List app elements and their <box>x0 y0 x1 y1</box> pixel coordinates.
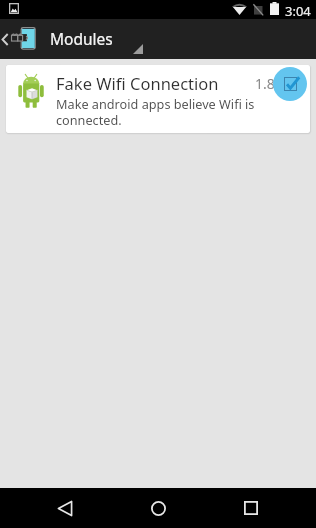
staticText: 3:04 <box>285 2 311 20</box>
button[interactable]: Recent apps <box>229 488 273 528</box>
button[interactable]: Toggle module enabled <box>273 67 307 101</box>
staticText: Fake Wifi Connection <box>56 72 219 94</box>
staticText: Modules <box>50 28 113 49</box>
staticText: 1.8 <box>255 74 275 93</box>
button[interactable]: Back <box>43 488 87 528</box>
button[interactable]: Navigate up <box>0 19 44 59</box>
staticText: Make android apps believe Wifi is connec… <box>56 95 256 128</box>
button[interactable]: Home <box>136 488 180 528</box>
button[interactable]: Fake Wifi Connection <box>6 65 310 133</box>
